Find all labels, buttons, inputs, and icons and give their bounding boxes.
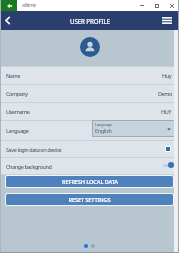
staticText: Change background <box>6 163 52 170</box>
staticText: Username <box>6 108 30 115</box>
staticText: Language <box>95 122 113 127</box>
button[interactable]: REFRESH LOCAL DATA <box>6 176 173 187</box>
button[interactable]: Change background <box>0 158 179 174</box>
button[interactable]: Company <box>0 85 179 102</box>
staticText: Demo <box>158 90 172 97</box>
button[interactable]: Maximise <box>149 0 164 11</box>
button[interactable]: Name <box>0 67 179 84</box>
button[interactable]: Minimise <box>135 0 149 11</box>
staticText: Huy <box>162 72 172 79</box>
staticText: USER PROFILE <box>70 17 111 25</box>
button[interactable]: Menu <box>154 11 179 30</box>
button[interactable]: Navigate back <box>0 11 15 30</box>
staticText: English <box>95 127 112 134</box>
button[interactable]: Language <box>0 121 179 140</box>
button[interactable]: Close <box>164 0 179 11</box>
button[interactable]: RESET SETTINGS <box>6 194 173 205</box>
staticText: HUY <box>161 108 172 115</box>
staticText: Save login data on device <box>6 146 62 153</box>
staticText: Company <box>6 90 28 97</box>
staticText: REFRESH LOCAL DATA <box>62 178 118 186</box>
button[interactable]: Username <box>0 103 179 120</box>
button[interactable]: Save login data on device <box>0 141 179 157</box>
button[interactable]: Back <box>0 0 17 11</box>
staticText: alltime <box>22 2 36 9</box>
staticText: Name <box>6 72 20 79</box>
staticText: RESET SETTINGS <box>68 196 111 204</box>
staticText: Language <box>6 127 29 134</box>
